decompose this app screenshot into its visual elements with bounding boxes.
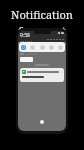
button[interactable]: Wi-Fi (21, 45, 26, 50)
staticText: 9:58 (20, 32, 30, 39)
button[interactable]: Bluetooth (30, 45, 35, 50)
button[interactable]: Search (20, 57, 33, 62)
button[interactable]: Auto rotate (58, 45, 63, 50)
staticText: for event (18, 23, 66, 38)
button[interactable] (20, 68, 64, 82)
button[interactable]: Flashlight (49, 45, 54, 50)
button[interactable]: Do not disturb (40, 45, 45, 50)
button[interactable]: Home (40, 120, 44, 124)
staticText: Tue, Nov 3 (20, 39, 33, 42)
staticText: Notification (11, 7, 73, 22)
